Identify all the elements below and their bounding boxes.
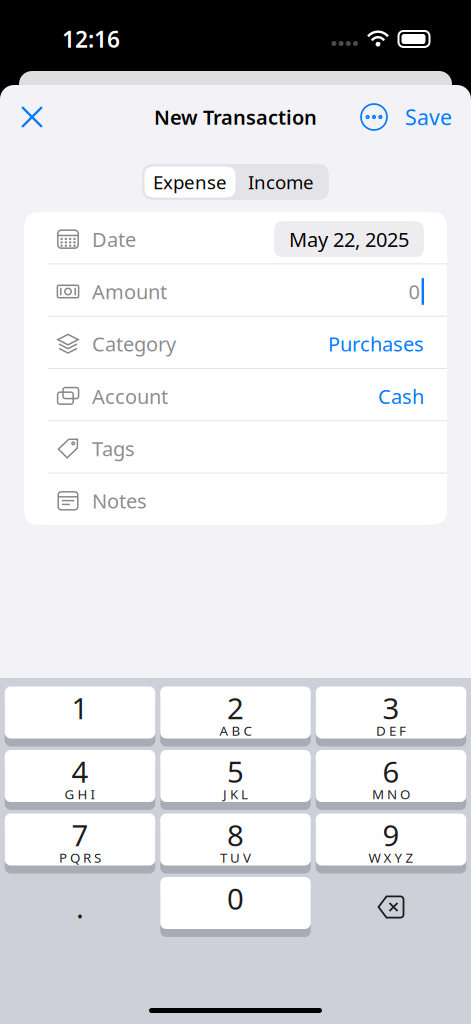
staticText: T U V (220, 849, 251, 866)
button[interactable]: Expense (144, 166, 235, 197)
staticText: Tags (92, 435, 135, 462)
staticText: May 22, 2025 (289, 226, 409, 252)
staticText: Amount (92, 278, 167, 305)
staticText: 6 (382, 752, 399, 791)
button[interactable]: Category (24, 317, 447, 368)
staticText: 0 (409, 278, 420, 305)
staticText: Expense (153, 170, 227, 194)
button[interactable]: 1 (5, 690, 155, 743)
staticText: 1 (71, 688, 88, 727)
staticText: A B C (219, 722, 251, 739)
button[interactable]: . (5, 880, 155, 933)
button[interactable]: 0 (160, 880, 311, 933)
staticText: 9 (382, 815, 399, 854)
staticText: 4 (71, 752, 88, 791)
staticText: Purchases (328, 330, 424, 357)
staticText: D E F (376, 722, 406, 739)
staticText: Cash (378, 383, 424, 409)
button[interactable]: Delete (316, 880, 466, 933)
button[interactable]: Notes (24, 474, 447, 525)
staticText: W X Y Z (368, 849, 413, 866)
staticText: P Q R S (59, 849, 101, 866)
button[interactable]: Tags (24, 421, 447, 473)
staticText: Save (405, 103, 452, 131)
staticText: Category (92, 330, 176, 357)
button[interactable]: 2 (160, 690, 311, 743)
staticText: Date (92, 226, 136, 252)
staticText: M N O (372, 785, 410, 803)
button[interactable]: Close (10, 95, 54, 139)
button[interactable]: Date (24, 212, 447, 263)
staticText: Income (248, 170, 314, 194)
staticText: G H I (64, 785, 95, 803)
button[interactable]: Account (24, 369, 447, 420)
button[interactable]: 6 (316, 753, 466, 806)
button[interactable]: Amount (24, 264, 447, 316)
button[interactable]: 5 (160, 753, 311, 806)
button[interactable]: Save (396, 95, 461, 139)
staticText: Account (92, 383, 168, 409)
button[interactable]: 7 (5, 817, 155, 870)
button[interactable]: 8 (160, 817, 311, 870)
staticText: 8 (227, 815, 244, 854)
button[interactable]: 4 (5, 753, 155, 806)
button[interactable]: More options (352, 95, 396, 139)
staticText: 7 (71, 815, 88, 854)
staticText: J K L (223, 785, 248, 803)
button[interactable]: 3 (316, 690, 466, 743)
staticText: New Transaction (154, 104, 317, 130)
staticText: 12:16 (62, 24, 120, 54)
staticText: Notes (92, 487, 147, 514)
staticText: 0 (227, 879, 244, 918)
button[interactable]: Income (235, 166, 326, 197)
staticText: . (76, 887, 84, 926)
staticText: 5 (227, 752, 244, 791)
button[interactable]: 9 (316, 817, 466, 870)
staticText: 3 (382, 688, 399, 727)
staticText: 2 (227, 688, 244, 727)
